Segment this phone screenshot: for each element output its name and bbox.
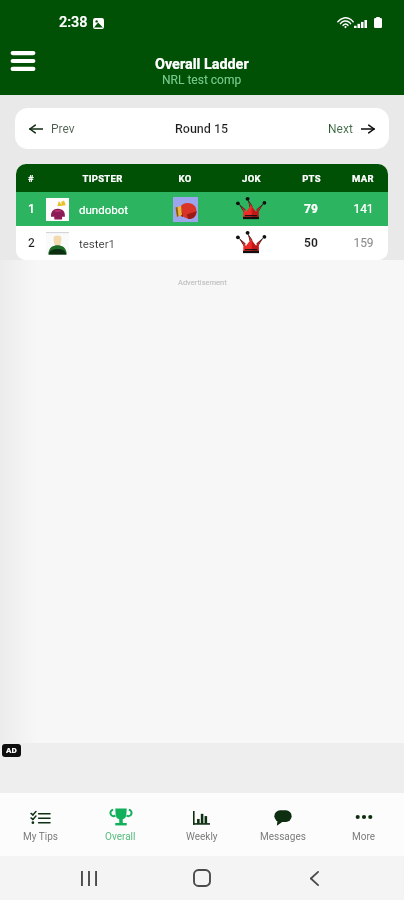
staticText: My Tips [23, 831, 58, 843]
staticText: KO [178, 173, 192, 184]
staticText: JOK [242, 173, 261, 184]
button[interactable]: 1 [16, 192, 388, 226]
staticText: 1 [28, 202, 35, 216]
button[interactable]: Home [187, 863, 217, 893]
staticText: Advertisement [178, 278, 227, 287]
staticText: AD [6, 746, 17, 755]
staticText: 2 [28, 236, 35, 250]
staticText: Overall Ladder [155, 56, 249, 73]
staticText: dundobot [79, 203, 128, 216]
button[interactable]: Recent apps [74, 863, 104, 893]
staticText: Prev [51, 122, 75, 136]
staticText: TIPSTER [82, 173, 123, 184]
staticText: PTS [302, 173, 321, 184]
staticText: # [28, 173, 34, 184]
button[interactable]: Overall [80, 793, 161, 812]
button[interactable]: Open navigation menu [1, 41, 45, 80]
staticText: Messages [260, 831, 306, 843]
staticText: 50 [304, 236, 318, 250]
staticText: 141 [353, 202, 374, 216]
staticText: 2:38 [59, 14, 88, 31]
staticText: Weekly [186, 831, 218, 843]
button[interactable]: Prev [15, 112, 89, 146]
staticText: NRL test comp [162, 73, 242, 87]
staticText: MAR [352, 173, 374, 184]
staticText: Round 15 [175, 121, 229, 136]
staticText: tester1 [79, 237, 116, 250]
staticText: 79 [304, 202, 318, 216]
staticText: Overall [105, 831, 136, 843]
button[interactable]: 2 [16, 226, 388, 260]
button[interactable]: Back [299, 863, 329, 893]
button[interactable]: Next [314, 112, 389, 146]
staticText: 159 [353, 236, 374, 250]
staticText: More [352, 831, 376, 843]
staticText: Next [328, 122, 353, 136]
